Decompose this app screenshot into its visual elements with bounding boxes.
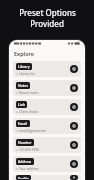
button[interactable]: Open Notes — [70, 84, 78, 92]
button[interactable]: Open Number — [70, 141, 78, 149]
staticText: Explore — [14, 50, 35, 57]
button[interactable]: Notes — [13, 80, 81, 96]
button[interactable]: Open Link — [70, 103, 78, 111]
staticText: email@gmail.com — [19, 129, 46, 133]
button[interactable]: Address — [13, 156, 81, 172]
button[interactable]: Open Profile — [70, 175, 78, 180]
button[interactable]: Email — [13, 118, 81, 134]
staticText: Library list — [19, 72, 35, 76]
staticText: Client choice — [19, 110, 38, 114]
staticText: Your address — [19, 167, 39, 171]
staticText: Profile — [18, 176, 29, 179]
staticText: Link — [18, 102, 25, 107]
button[interactable]: Profile — [13, 175, 81, 180]
button[interactable]: Number — [13, 137, 81, 153]
button[interactable]: Open Library — [70, 65, 78, 73]
staticText: Notes — [18, 83, 28, 88]
button[interactable]: Library — [13, 61, 81, 77]
button[interactable]: Link — [13, 99, 81, 115]
button[interactable]: Open Address — [70, 160, 78, 168]
button[interactable]: Open Email — [70, 122, 78, 130]
staticText: Address — [18, 159, 32, 164]
staticText: Library — [18, 64, 30, 69]
staticText: Provided — [30, 18, 64, 29]
staticText: 123 456 7890 — [19, 148, 39, 152]
staticText: Number — [18, 140, 32, 145]
staticText: Email — [18, 121, 28, 126]
staticText: Recent notes — [19, 91, 39, 95]
staticText: Preset Options — [19, 7, 76, 18]
